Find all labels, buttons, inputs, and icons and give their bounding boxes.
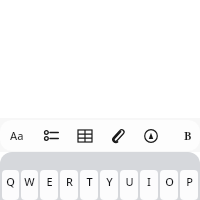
staticText: W [24, 174, 35, 189]
button[interactable]: Text formatting [0, 120, 34, 151]
button[interactable]: E [40, 170, 58, 200]
staticText: Y [106, 174, 113, 189]
staticText: Aa [10, 128, 24, 143]
button[interactable]: Highlighter [134, 120, 167, 151]
button[interactable]: T [80, 170, 98, 200]
staticText: P [186, 174, 193, 189]
staticText: E [46, 174, 53, 189]
button[interactable]: Bulleted list [34, 120, 68, 151]
staticText: O [165, 174, 174, 189]
button[interactable]: Attach file [101, 120, 134, 151]
staticText: U [125, 174, 134, 189]
button[interactable]: P [180, 170, 198, 200]
button[interactable]: U [120, 170, 138, 200]
staticText: B [184, 128, 192, 143]
staticText: R [66, 174, 73, 189]
button[interactable]: Insert table [68, 120, 101, 151]
button[interactable]: Y [100, 170, 118, 200]
staticText: I [147, 174, 151, 189]
staticText: Q [6, 174, 15, 189]
button[interactable]: W [21, 170, 38, 200]
staticText: T [86, 174, 93, 189]
button[interactable]: Bold [167, 120, 200, 151]
button[interactable]: O [160, 170, 178, 200]
button[interactable]: R [60, 170, 78, 200]
button[interactable]: I [140, 170, 158, 200]
button[interactable]: Q [2, 170, 19, 200]
